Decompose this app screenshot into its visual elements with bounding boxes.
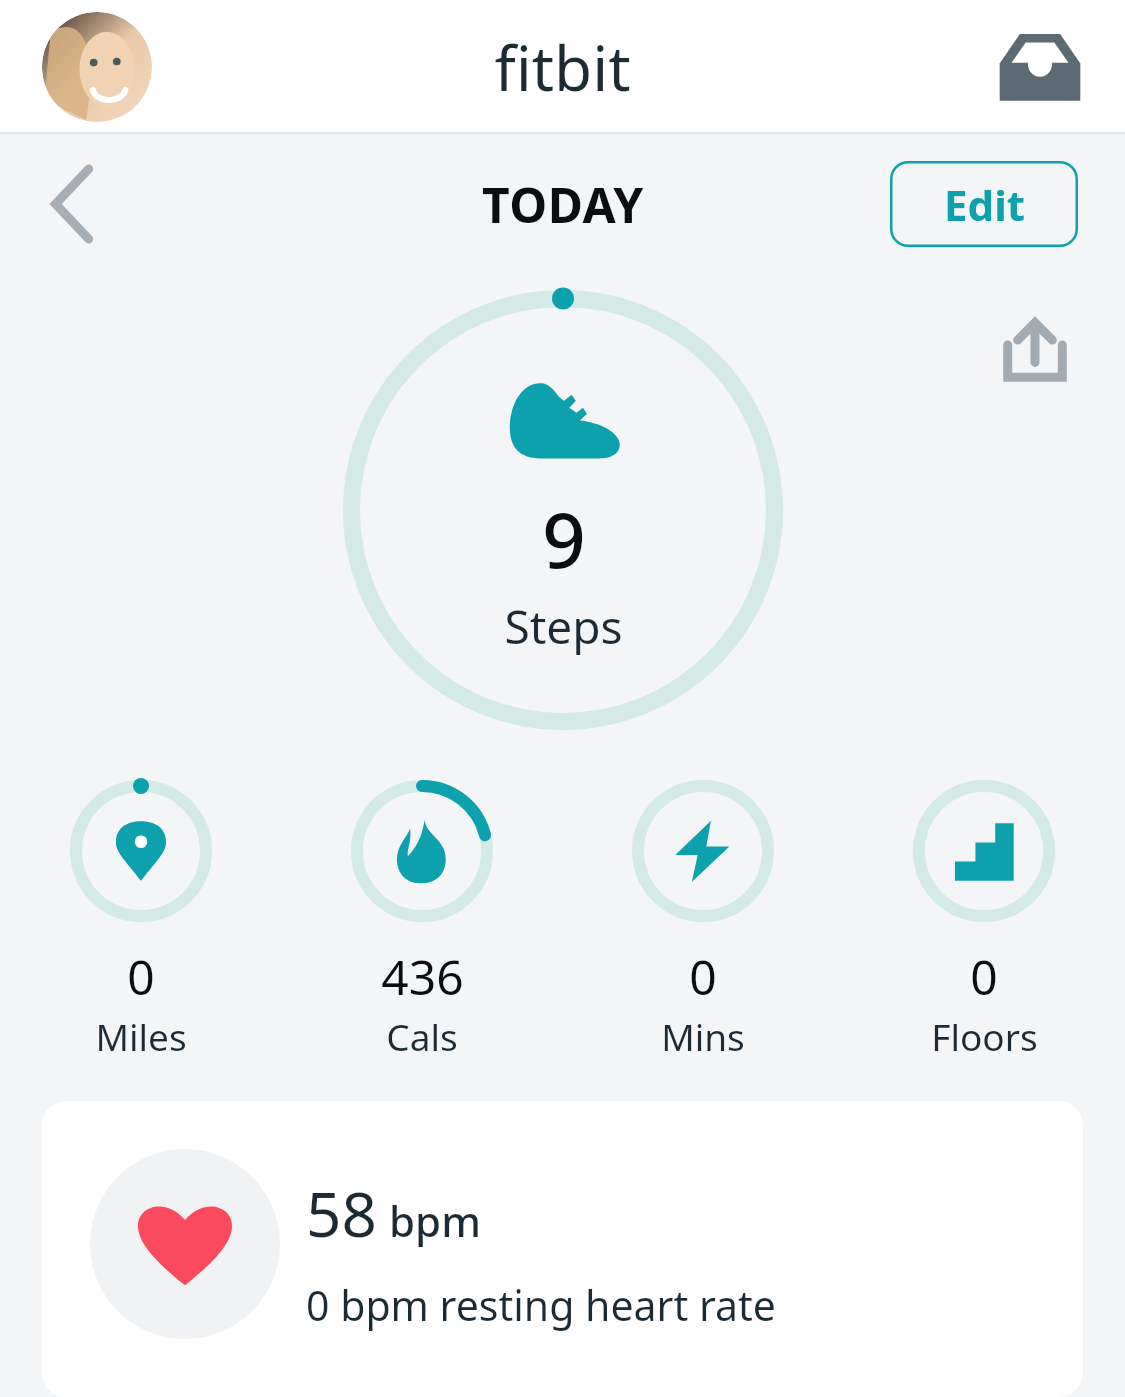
staticText: 0 bpm resting heart rate xyxy=(306,1277,776,1333)
staticText: 0 xyxy=(689,944,717,1009)
button[interactable]: 0 xyxy=(859,780,1109,1061)
staticText: TODAY xyxy=(482,172,644,237)
button[interactable]: 0 xyxy=(578,780,828,1061)
button[interactable]: 9 xyxy=(343,290,783,730)
button[interactable]: 436 xyxy=(297,780,547,1061)
staticText: Miles xyxy=(95,1011,187,1061)
button[interactable]: Profile xyxy=(42,12,152,122)
staticText: Steps xyxy=(504,595,623,658)
staticText: 436 xyxy=(381,944,464,1009)
staticText: fitbit xyxy=(494,25,631,109)
staticText: Mins xyxy=(661,1011,745,1061)
staticText: Floors xyxy=(931,1011,1038,1061)
staticText: bpm xyxy=(389,1192,481,1249)
staticText: Cals xyxy=(386,1011,458,1061)
staticText: 0 xyxy=(127,944,155,1009)
button[interactable]: 0 xyxy=(16,780,266,1061)
button[interactable]: Share xyxy=(989,304,1081,396)
staticText: 9 xyxy=(542,487,586,591)
staticText: 0 xyxy=(970,944,998,1009)
button[interactable]: Inbox xyxy=(985,12,1095,122)
button[interactable]: Edit xyxy=(890,161,1078,247)
button[interactable]: 58 xyxy=(42,1101,1083,1397)
button[interactable]: Back xyxy=(26,156,122,252)
staticText: Edit xyxy=(944,176,1025,233)
staticText: 58 xyxy=(306,1171,377,1255)
